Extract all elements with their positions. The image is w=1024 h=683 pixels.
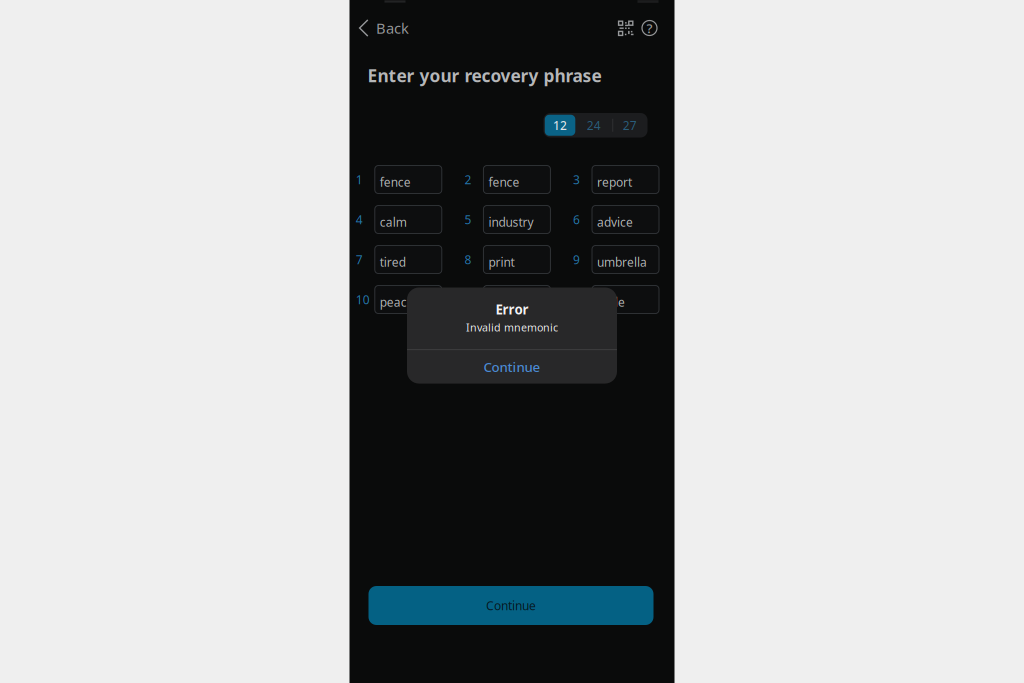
staticText: print	[488, 254, 514, 270]
staticText: Enter your recovery phrase	[367, 64, 601, 87]
staticText: 5	[464, 211, 471, 227]
staticText: 8	[464, 251, 471, 267]
button[interactable]: tired	[375, 245, 442, 273]
staticText: 12	[553, 117, 567, 133]
staticText: Error	[495, 300, 528, 318]
button[interactable]: gospel	[483, 285, 550, 313]
staticText: 24	[587, 117, 601, 133]
button[interactable]: fence	[375, 165, 442, 193]
staticText: 6	[573, 211, 580, 227]
staticText: advice	[597, 214, 633, 230]
button[interactable]: report	[592, 165, 659, 193]
staticText: 27	[623, 117, 637, 133]
staticText: tired	[380, 254, 406, 270]
button[interactable]: Back	[349, 11, 409, 45]
staticText: Continue	[483, 358, 540, 376]
staticText: 7	[356, 251, 363, 267]
button[interactable]: Continue	[368, 586, 653, 625]
staticText: peace	[380, 294, 414, 310]
button[interactable]: Scan QR code	[614, 13, 637, 42]
staticText: umbrella	[597, 254, 647, 270]
staticText: 3	[573, 171, 580, 187]
button[interactable]: Help	[638, 13, 661, 42]
staticText: industry	[488, 214, 533, 230]
staticText: Invalid mnemonic	[466, 320, 558, 334]
button[interactable]: peace	[375, 285, 442, 313]
staticText: 4	[356, 211, 363, 227]
button[interactable]: advice	[592, 205, 659, 233]
button[interactable]: table	[592, 285, 659, 313]
staticText: 2	[464, 171, 471, 187]
button[interactable]: industry	[483, 205, 550, 233]
staticText: Continue	[486, 597, 536, 613]
button[interactable]: 27	[613, 115, 646, 136]
button[interactable]: Continue	[407, 350, 617, 384]
staticText: report	[597, 174, 632, 190]
button[interactable]: 12	[545, 115, 575, 136]
staticText: fence	[488, 174, 519, 190]
button[interactable]: calm	[375, 205, 442, 233]
button[interactable]: fence	[483, 165, 550, 193]
staticText: Back	[376, 18, 409, 38]
staticText: fence	[380, 174, 411, 190]
staticText: gospel	[488, 294, 525, 310]
staticText: 10	[356, 291, 370, 307]
staticText: table	[597, 294, 625, 310]
button[interactable]: print	[483, 245, 550, 273]
button[interactable]: 24	[575, 115, 612, 136]
staticText: 1	[356, 171, 363, 187]
button[interactable]: umbrella	[592, 245, 659, 273]
staticText: calm	[380, 214, 407, 230]
staticText: ?	[646, 19, 652, 37]
staticText: 9	[573, 251, 580, 267]
